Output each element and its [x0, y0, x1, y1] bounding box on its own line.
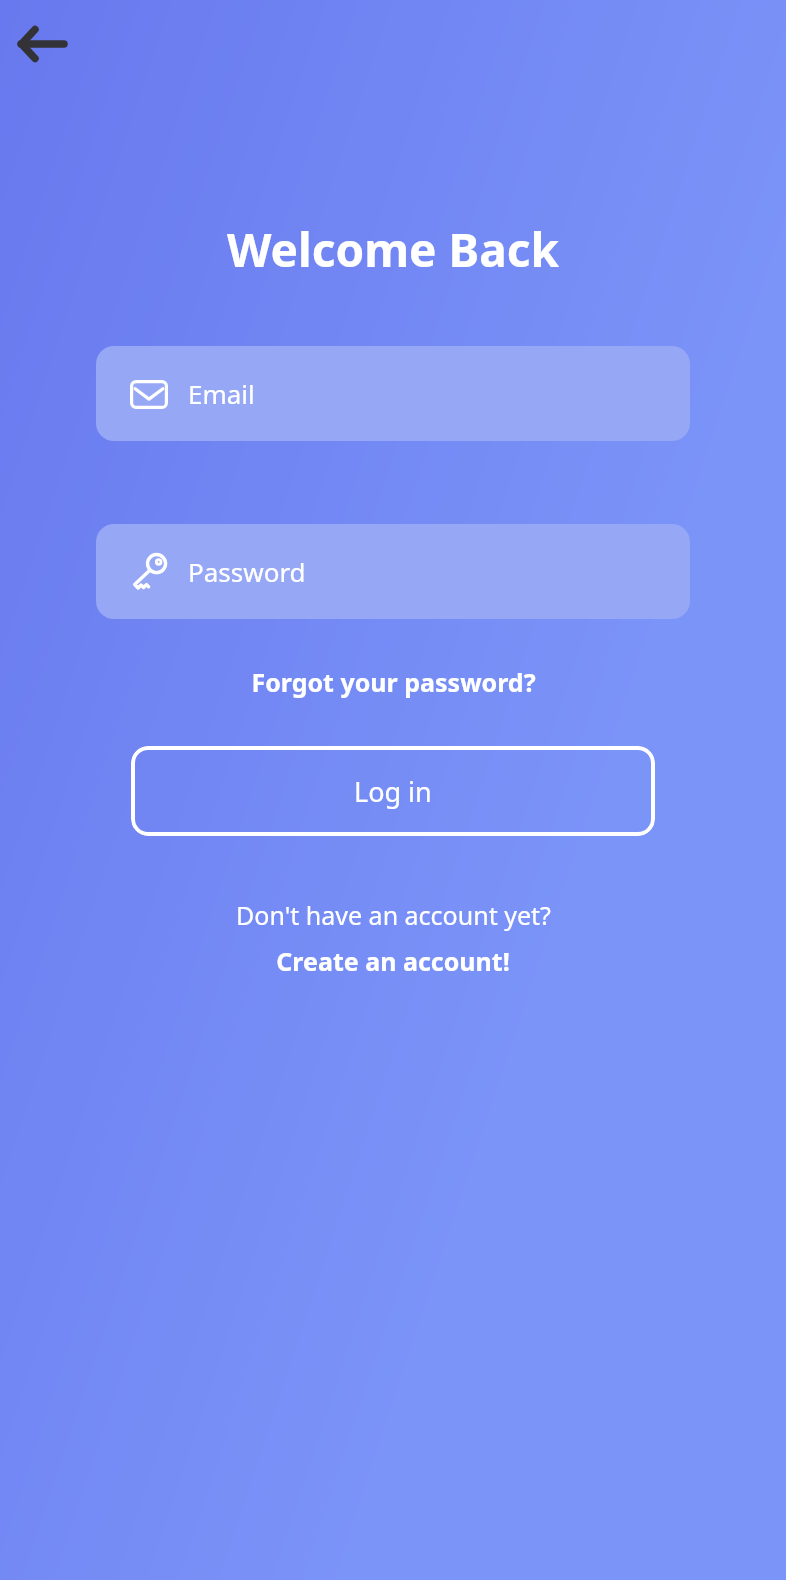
button[interactable]: Forgot your password? — [243, 661, 544, 703]
button[interactable]: Password — [96, 524, 690, 619]
staticText: Welcome Back — [227, 218, 559, 281]
button[interactable]: Back — [6, 14, 78, 74]
button[interactable]: Email — [96, 346, 690, 441]
staticText: Log in — [354, 773, 432, 810]
staticText: Create an account! — [276, 944, 510, 978]
button[interactable]: Log in — [131, 746, 655, 836]
staticText: Email — [188, 376, 255, 411]
button[interactable]: Create an account! — [268, 942, 518, 980]
staticText: Forgot your password? — [251, 665, 536, 699]
staticText: Don't have an account yet? — [236, 898, 551, 932]
staticText: Password — [188, 554, 306, 589]
